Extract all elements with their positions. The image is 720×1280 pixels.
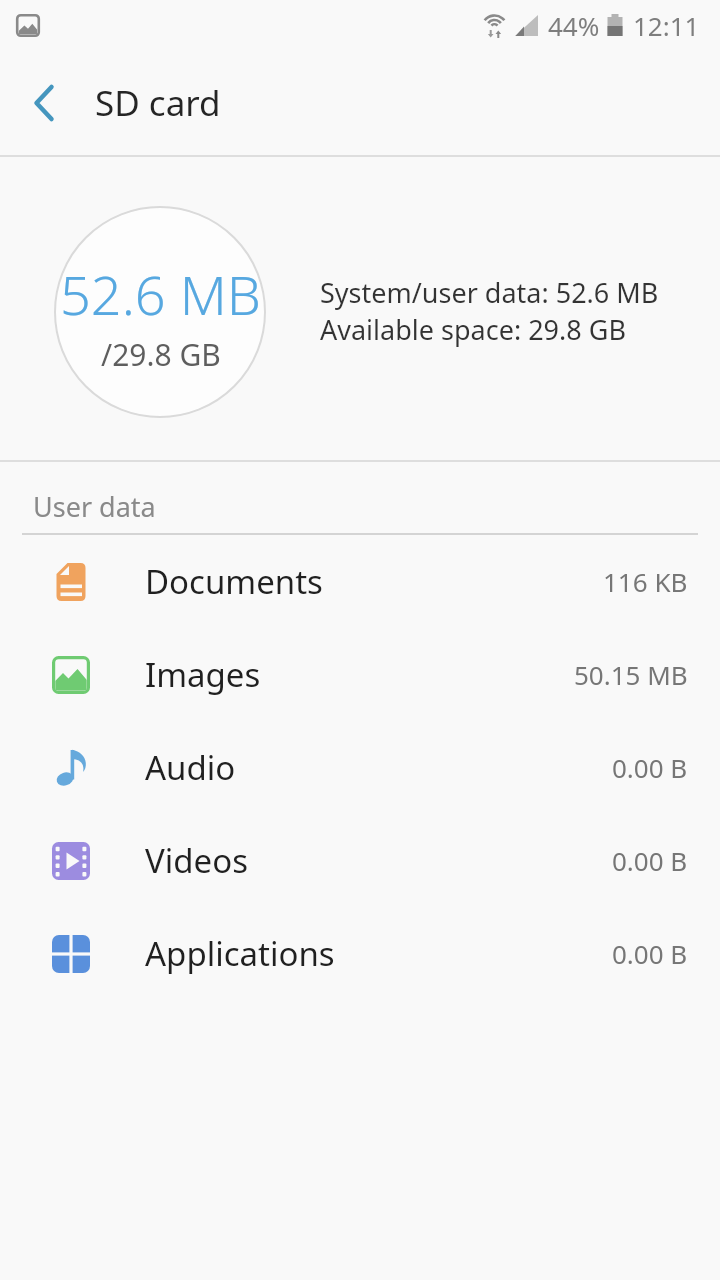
staticText: 116 KB [603,564,688,599]
staticText: 0.00 B [612,843,688,878]
staticText: Audio [145,745,236,790]
button[interactable]: Applications [0,907,720,1000]
button[interactable]: Videos [0,814,720,907]
staticText: 0.00 B [612,750,688,785]
button[interactable]: Audio [0,721,720,814]
staticText: Available space: 29.8 GB [320,311,626,348]
button[interactable]: Images [0,628,720,721]
staticText: SD card [95,79,221,127]
staticText: System/user data: 52.6 MB [320,274,659,311]
staticText: 12:11 [633,8,700,43]
staticText: 52.6 MB [60,257,261,331]
button[interactable] [0,50,88,155]
staticText: Images [145,652,261,697]
staticText: 50.15 MB [574,657,688,692]
staticText: /29.8 GB [101,334,221,375]
staticText: Videos [145,838,248,883]
staticText: 0.00 B [612,936,688,971]
staticText: User data [33,488,156,525]
button[interactable]: Documents [0,535,720,628]
staticText: Applications [145,931,335,976]
staticText: Documents [145,559,323,604]
staticText: 44% [548,8,600,43]
